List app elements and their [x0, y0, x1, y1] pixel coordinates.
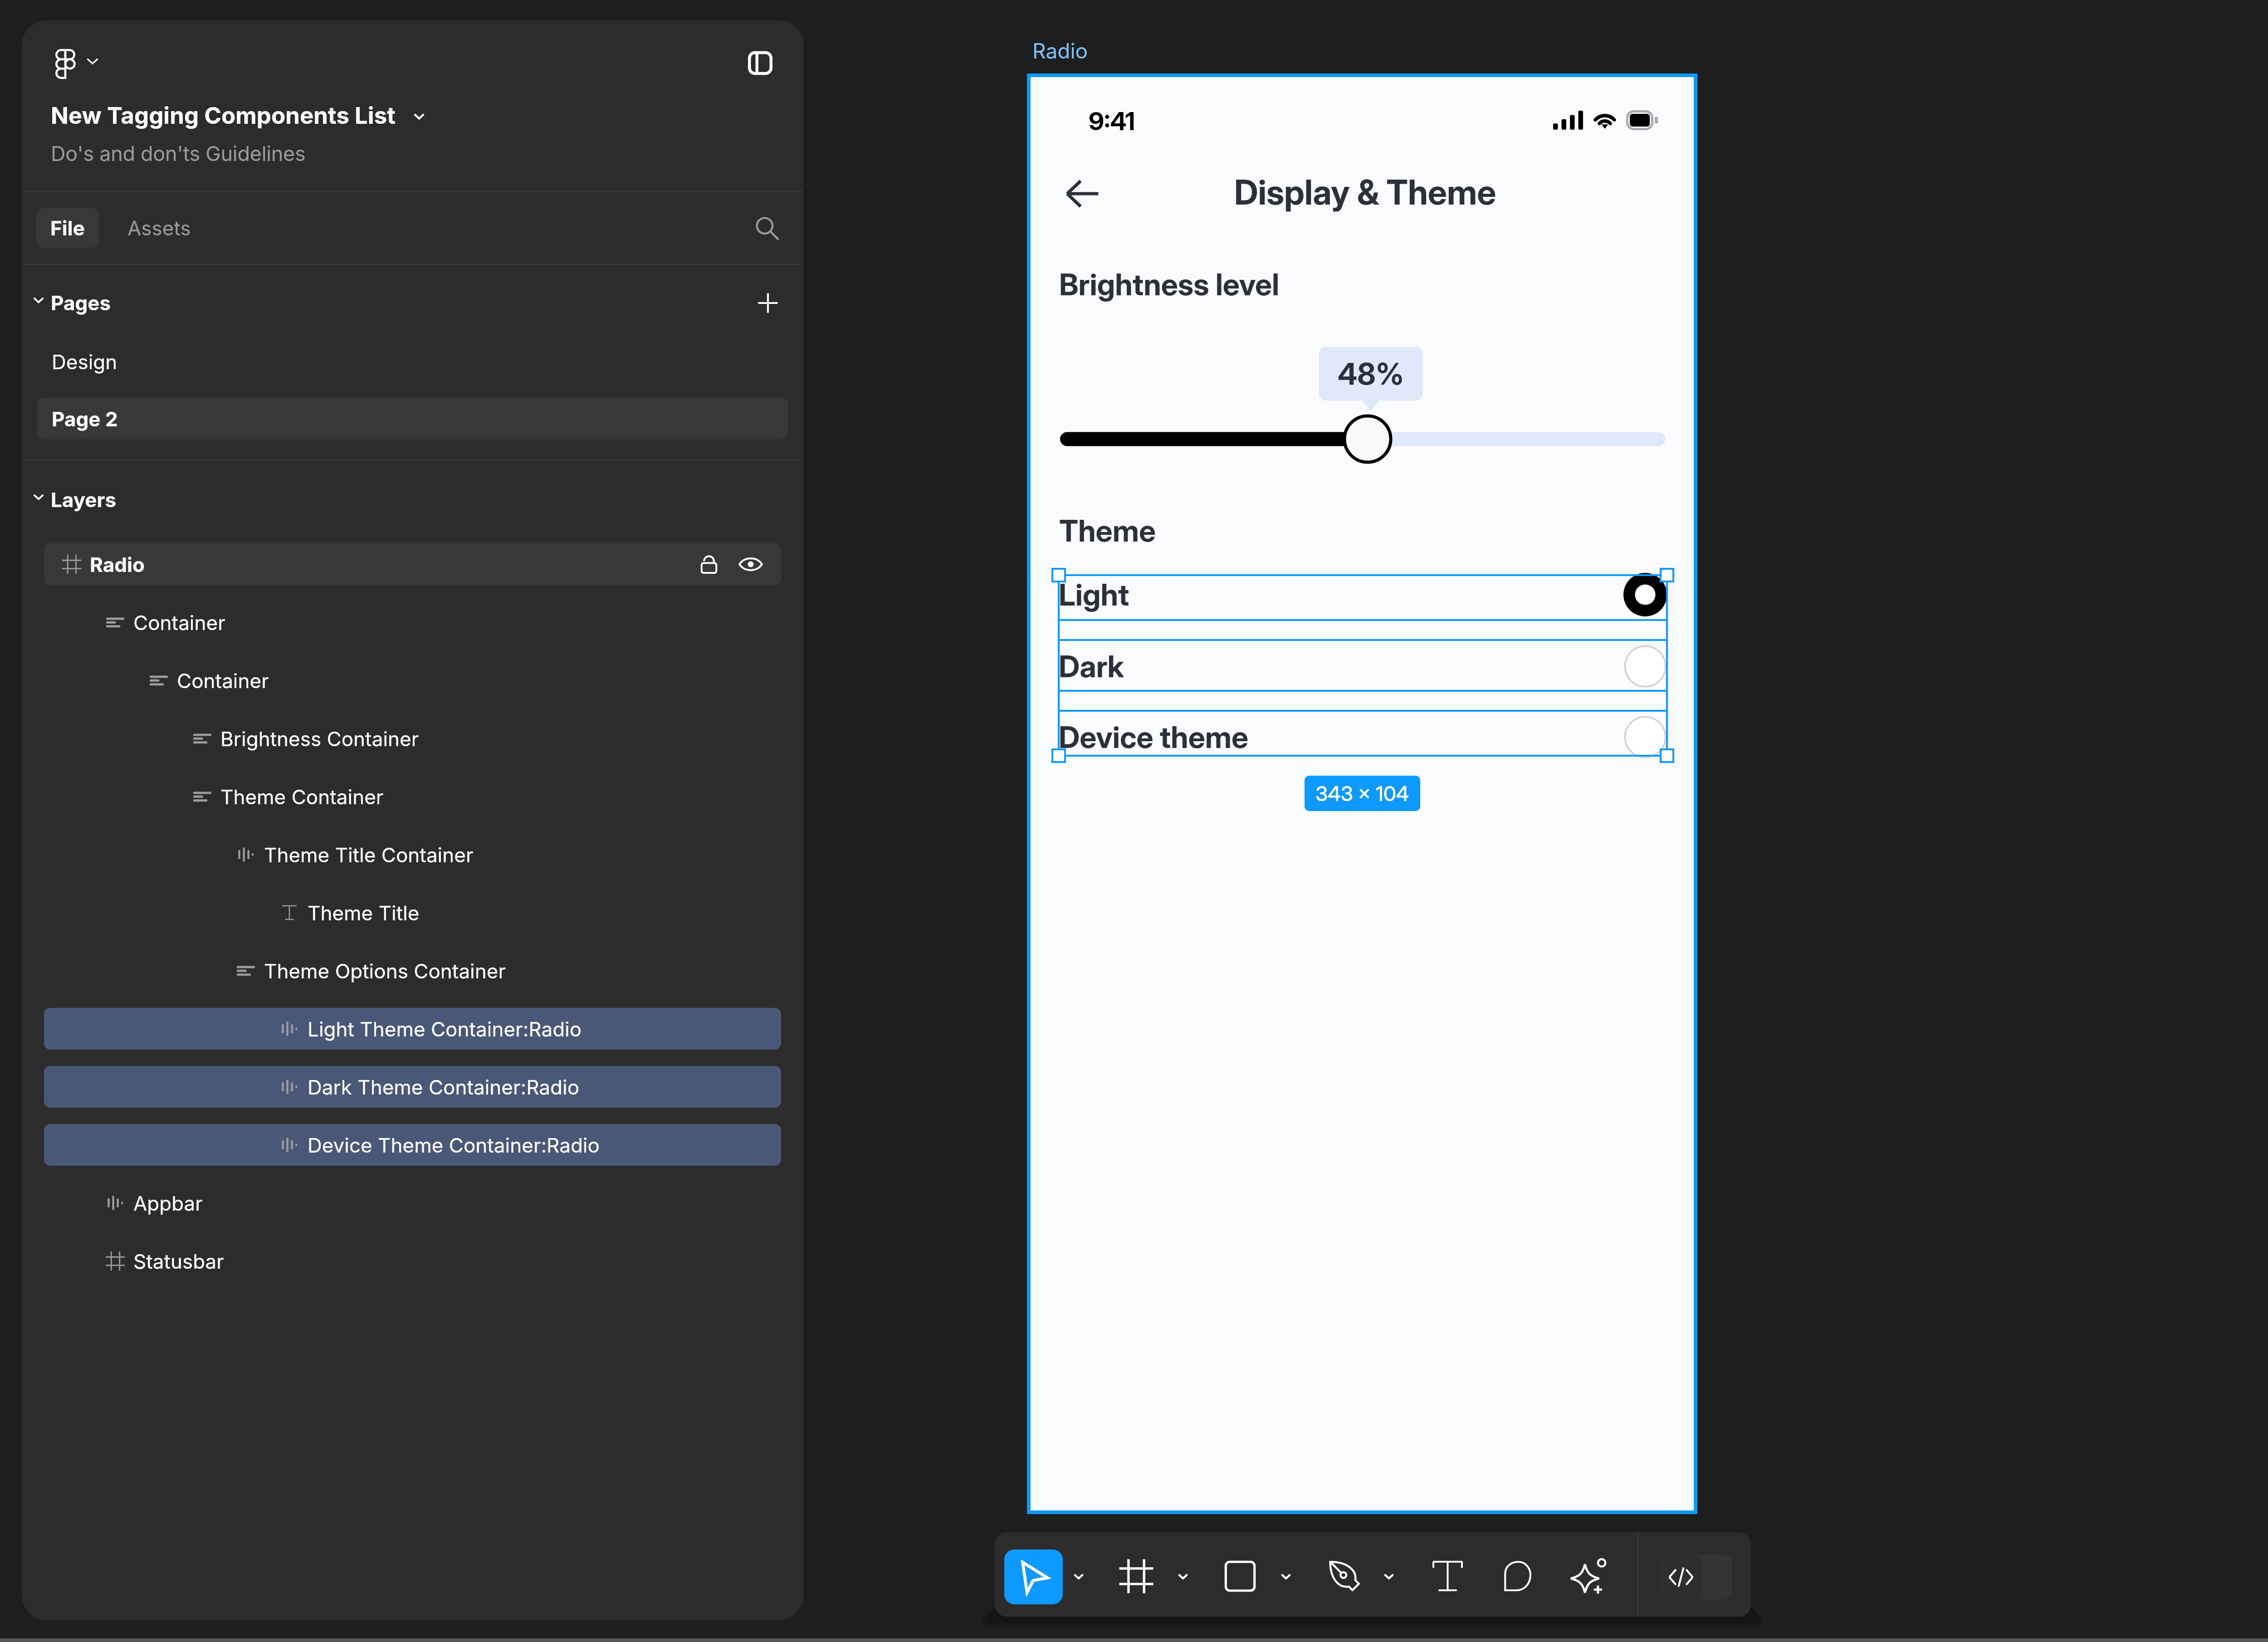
- button[interactable]: Light: [1059, 572, 1667, 617]
- staticText: Light Theme Container:Radio: [308, 1017, 582, 1041]
- staticText: Page 2: [52, 407, 118, 431]
- button[interactable]: Move tool: [1004, 1549, 1063, 1604]
- staticText: Theme Title Container: [264, 843, 474, 867]
- staticText: Pages: [51, 291, 111, 315]
- button[interactable]: Theme Title: [44, 892, 781, 933]
- button[interactable]: More options: [1271, 1550, 1300, 1602]
- staticText: New Tagging Components List: [51, 102, 396, 130]
- staticText: Do's and don'ts Guidelines: [51, 141, 306, 166]
- staticText: Design: [52, 350, 117, 374]
- button[interactable]: Light Theme Container:Radio: [44, 1008, 781, 1050]
- button[interactable]: Actions: [1562, 1550, 1617, 1602]
- button[interactable]: Dark Theme Container:Radio: [44, 1066, 781, 1108]
- button[interactable]: Lock layer: [697, 552, 721, 577]
- button[interactable]: Shape tool: [1213, 1550, 1267, 1602]
- staticText: 343 × 104: [1315, 781, 1409, 806]
- button[interactable]: Theme Title Container: [44, 834, 781, 875]
- button[interactable]: Device theme: [1059, 714, 1667, 760]
- button[interactable]: File: [36, 208, 99, 248]
- staticText: Radio: [90, 552, 145, 577]
- staticText: Device Theme Container:Radio: [308, 1133, 600, 1157]
- button[interactable]: File options: [411, 108, 428, 125]
- staticText: 48%: [1338, 356, 1404, 392]
- button[interactable]: Theme Container: [44, 776, 781, 817]
- staticText: File: [50, 216, 85, 240]
- staticText: Brightness level: [1059, 266, 1280, 303]
- button[interactable]: Text tool: [1420, 1550, 1475, 1602]
- button[interactable]: Appbar: [44, 1182, 781, 1224]
- button[interactable]: Figma menu: [55, 49, 75, 79]
- button[interactable]: Toggle side panels: [745, 51, 775, 75]
- staticText: Theme Options Container: [264, 959, 506, 983]
- staticText: Brightness Container: [220, 727, 419, 751]
- staticText: Display & Theme: [1234, 171, 1496, 213]
- button[interactable]: Assets: [113, 208, 205, 248]
- button[interactable]: Page 2: [37, 398, 788, 440]
- staticText: Appbar: [133, 1191, 203, 1215]
- button[interactable]: Pen tool: [1317, 1550, 1372, 1602]
- button[interactable]: Radio: [44, 543, 781, 585]
- button[interactable]: Open menu: [83, 51, 103, 71]
- staticText: Theme Container: [220, 785, 384, 809]
- staticText: Dark Theme Container:Radio: [308, 1075, 580, 1099]
- button[interactable]: Design: [37, 341, 788, 382]
- button[interactable]: Dark: [1059, 644, 1667, 689]
- button[interactable]: More options: [1374, 1550, 1403, 1602]
- button[interactable]: Container: [44, 601, 781, 643]
- button[interactable]: Collapse layers: [30, 488, 47, 505]
- staticText: Theme: [1059, 513, 1156, 549]
- staticText: 9:41: [1089, 106, 1135, 137]
- button[interactable]: Container: [44, 660, 781, 701]
- staticText: Light: [1059, 577, 1129, 613]
- button[interactable]: More options: [1168, 1550, 1198, 1602]
- staticText: Container: [133, 611, 225, 635]
- staticText: Device theme: [1059, 719, 1249, 755]
- staticText: Container: [177, 669, 269, 693]
- staticText: Assets: [127, 216, 191, 240]
- staticText: Statusbar: [133, 1249, 224, 1273]
- button[interactable]: Brightness Container: [44, 718, 781, 759]
- button[interactable]: Toggle visibility: [738, 552, 763, 577]
- button[interactable]: Search: [755, 216, 779, 240]
- staticText: Theme Title: [308, 901, 420, 925]
- button[interactable]: Frame tool: [1109, 1550, 1163, 1602]
- button[interactable]: Collapse pages: [30, 291, 47, 308]
- button[interactable]: Device Theme Container:Radio: [44, 1124, 781, 1166]
- button[interactable]: Comment tool: [1491, 1550, 1545, 1602]
- button[interactable]: More options: [1064, 1550, 1093, 1602]
- staticText: Dark: [1059, 648, 1124, 684]
- button[interactable]: Back: [1059, 170, 1107, 218]
- staticText: Layers: [51, 488, 117, 512]
- staticText: Radio: [1032, 38, 1088, 64]
- button[interactable]: Add page: [757, 292, 779, 314]
- button[interactable]: Statusbar: [44, 1240, 781, 1282]
- button[interactable]: Dev mode: [1659, 1555, 1732, 1599]
- button[interactable]: Theme Options Container: [44, 950, 781, 992]
